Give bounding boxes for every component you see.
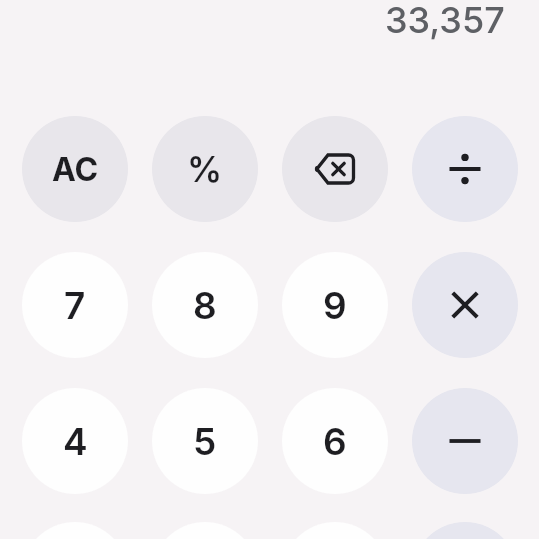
staticText: % — [187, 148, 223, 190]
button[interactable]: 6 — [282, 388, 388, 494]
button[interactable]: 2 — [152, 522, 258, 539]
button[interactable]: 7 — [22, 252, 128, 358]
button[interactable]: 3 — [282, 522, 388, 539]
staticText: 6 — [323, 419, 347, 464]
button[interactable]: 8 — [152, 252, 258, 358]
staticText: 9 — [323, 283, 347, 328]
staticText: 33,357 — [385, 0, 505, 42]
staticText: 8 — [193, 283, 217, 328]
staticText: 4 — [63, 419, 88, 464]
button[interactable] — [282, 116, 388, 222]
staticText: 7 — [64, 283, 86, 328]
button[interactable]: % — [152, 116, 258, 222]
staticText: 5 — [193, 419, 217, 464]
button[interactable] — [412, 388, 518, 494]
button[interactable]: 9 — [282, 252, 388, 358]
button[interactable] — [412, 522, 518, 539]
button[interactable]: 4 — [22, 388, 128, 494]
button[interactable]: 5 — [152, 388, 258, 494]
button[interactable] — [412, 252, 518, 358]
button[interactable]: 1 — [22, 522, 128, 539]
button[interactable] — [412, 116, 518, 222]
staticText: AC — [52, 150, 99, 189]
button[interactable]: AC — [22, 116, 128, 222]
